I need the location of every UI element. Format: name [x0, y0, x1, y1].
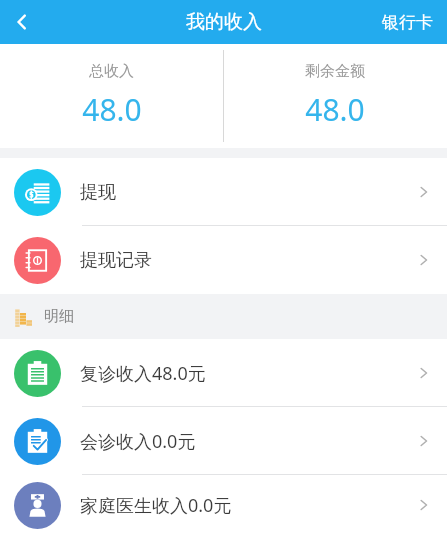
staticText: 我的收入 [186, 10, 262, 34]
button[interactable]: Back [0, 0, 44, 44]
staticText: 剩余金额 [305, 62, 365, 81]
staticText: 提现记录 [80, 249, 417, 272]
staticText: 明细 [44, 307, 74, 326]
staticText: 家庭医生收入0.0元 [80, 493, 417, 518]
staticText: 复诊收入48.0元 [80, 361, 417, 386]
button[interactable]: 提现 [0, 158, 447, 226]
staticText: 48.0 [82, 89, 142, 130]
staticText: 银行卡 [382, 12, 433, 33]
staticText: 提现 [80, 181, 417, 204]
button[interactable]: 提现记录 [0, 226, 447, 294]
button[interactable]: 银行卡 [368, 4, 447, 41]
staticText: 总收入 [89, 62, 134, 81]
staticText: 48.0 [305, 89, 365, 130]
button[interactable]: 复诊收入48.0元 [0, 339, 447, 407]
button[interactable]: 会诊收入0.0元 [0, 407, 447, 475]
staticText: 会诊收入0.0元 [80, 429, 417, 454]
button[interactable]: 家庭医生收入0.0元 [0, 475, 447, 535]
